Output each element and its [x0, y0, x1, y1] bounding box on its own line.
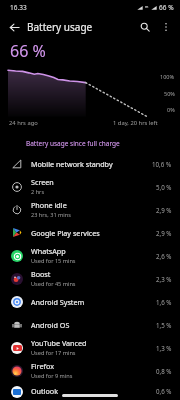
- staticText: 2,3 %: [156, 275, 172, 283]
- button[interactable]: More options: [157, 18, 175, 36]
- button[interactable]: Firefox: [0, 359, 180, 382]
- staticText: Used for 17 mins: [31, 349, 76, 357]
- button[interactable]: YouTube Vanced: [0, 336, 180, 359]
- staticText: Battery usage: [27, 20, 93, 34]
- staticText: YouTube Vanced: [31, 338, 87, 348]
- staticText: WhatsApp: [31, 246, 66, 256]
- button[interactable]: Back: [4, 17, 24, 37]
- staticText: Android System: [31, 297, 85, 307]
- button[interactable]: Android System: [0, 290, 180, 313]
- staticText: Boost: [31, 269, 51, 279]
- staticText: 10,6 %: [152, 160, 172, 168]
- staticText: Google Play services: [31, 228, 100, 238]
- staticText: 0%: [167, 106, 175, 113]
- staticText: Used for 15 mins: [31, 257, 76, 265]
- staticText: Used for 9 mins: [31, 372, 73, 380]
- staticText: 5,0 %: [156, 183, 172, 191]
- button[interactable]: Android OS: [0, 313, 180, 336]
- staticText: 2,9 %: [156, 229, 172, 237]
- staticText: 2 hrs: [31, 188, 45, 196]
- staticText: Android OS: [31, 320, 70, 330]
- button[interactable]: Boost: [0, 267, 180, 290]
- button[interactable]: Mobile network standby: [0, 152, 180, 175]
- button[interactable]: Search: [135, 17, 155, 37]
- staticText: Outlook: [31, 386, 59, 396]
- staticText: 0,6 %: [156, 387, 172, 395]
- staticText: Battery usage since full charge: [26, 139, 120, 148]
- staticText: 23 hrs, 31 mins: [31, 211, 71, 219]
- staticText: 16.33: [10, 3, 27, 12]
- staticText: 24 hrs ago: [9, 119, 38, 127]
- staticText: 1,5 %: [156, 321, 172, 329]
- staticText: 66 %: [10, 40, 46, 62]
- staticText: Mobile network standby: [31, 159, 113, 169]
- staticText: Phone idle: [31, 200, 67, 210]
- staticText: 2,6 %: [156, 252, 172, 260]
- staticText: Firefox: [31, 361, 54, 371]
- staticText: 50%: [164, 90, 175, 97]
- staticText: Screen: [31, 177, 54, 187]
- button[interactable]: Phone idle: [0, 198, 180, 221]
- staticText: 100%: [160, 73, 175, 80]
- staticText: Used for 45 mins: [31, 280, 76, 288]
- staticText: 2,9 %: [156, 206, 172, 214]
- button[interactable]: Google Play services: [0, 221, 180, 244]
- button[interactable]: Screen: [0, 175, 180, 198]
- staticText: 1 day, 20 hrs left: [113, 119, 158, 127]
- staticText: ᵐ: [145, 4, 149, 11]
- staticText: 1,6 %: [156, 298, 172, 306]
- staticText: 0,8 %: [156, 367, 172, 375]
- button[interactable]: Outlook: [0, 382, 180, 400]
- staticText: 66 %: [159, 3, 174, 12]
- staticText: 1,3 %: [156, 344, 172, 352]
- button[interactable]: WhatsApp: [0, 244, 180, 267]
